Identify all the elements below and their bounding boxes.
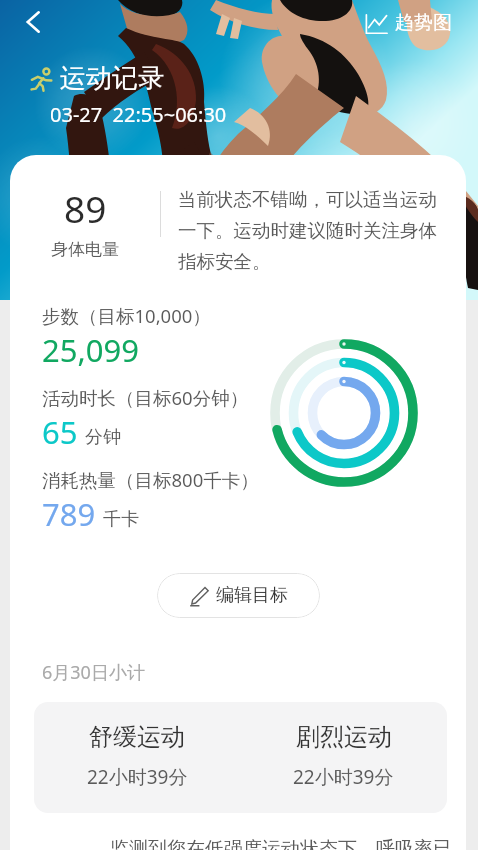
staticText: 当前状态不错呦，可以适当运动一下。运动时建议随时关注身体指标安全。 [178,188,440,274]
button[interactable]: 编辑目标 [157,573,320,618]
staticText: 22小时39分 [293,764,394,790]
staticText: 22小时39分 [87,764,188,790]
staticText: 89 [64,183,107,233]
staticText: 789 [42,493,96,535]
staticText: 剧烈运动 [296,722,392,752]
staticText: 舒缓运动 [89,722,185,752]
staticText: 监测到您在低强度运动状态下，呼吸率已 [110,837,452,850]
staticText: 6月30日小计 [42,660,145,685]
button[interactable]: 趋势图 [359,5,458,41]
staticText: 步数（目标10,000） [42,303,211,328]
staticText: 趋势图 [395,11,452,35]
staticText: 65 [42,411,78,453]
staticText: 身体电量 [51,239,119,260]
button[interactable]: Back [11,0,55,44]
staticText: 运动记录 [60,62,164,95]
staticText: 活动时长（目标60分钟） [42,385,249,410]
staticText: 25,099 [42,329,139,371]
staticText: 分钟 [85,426,121,449]
staticText: 消耗热量（目标800千卡） [42,467,259,492]
staticText: 千卡 [103,508,139,531]
staticText: 编辑目标 [216,584,288,607]
staticText: 03-27 22:55~06:30 [50,101,227,128]
